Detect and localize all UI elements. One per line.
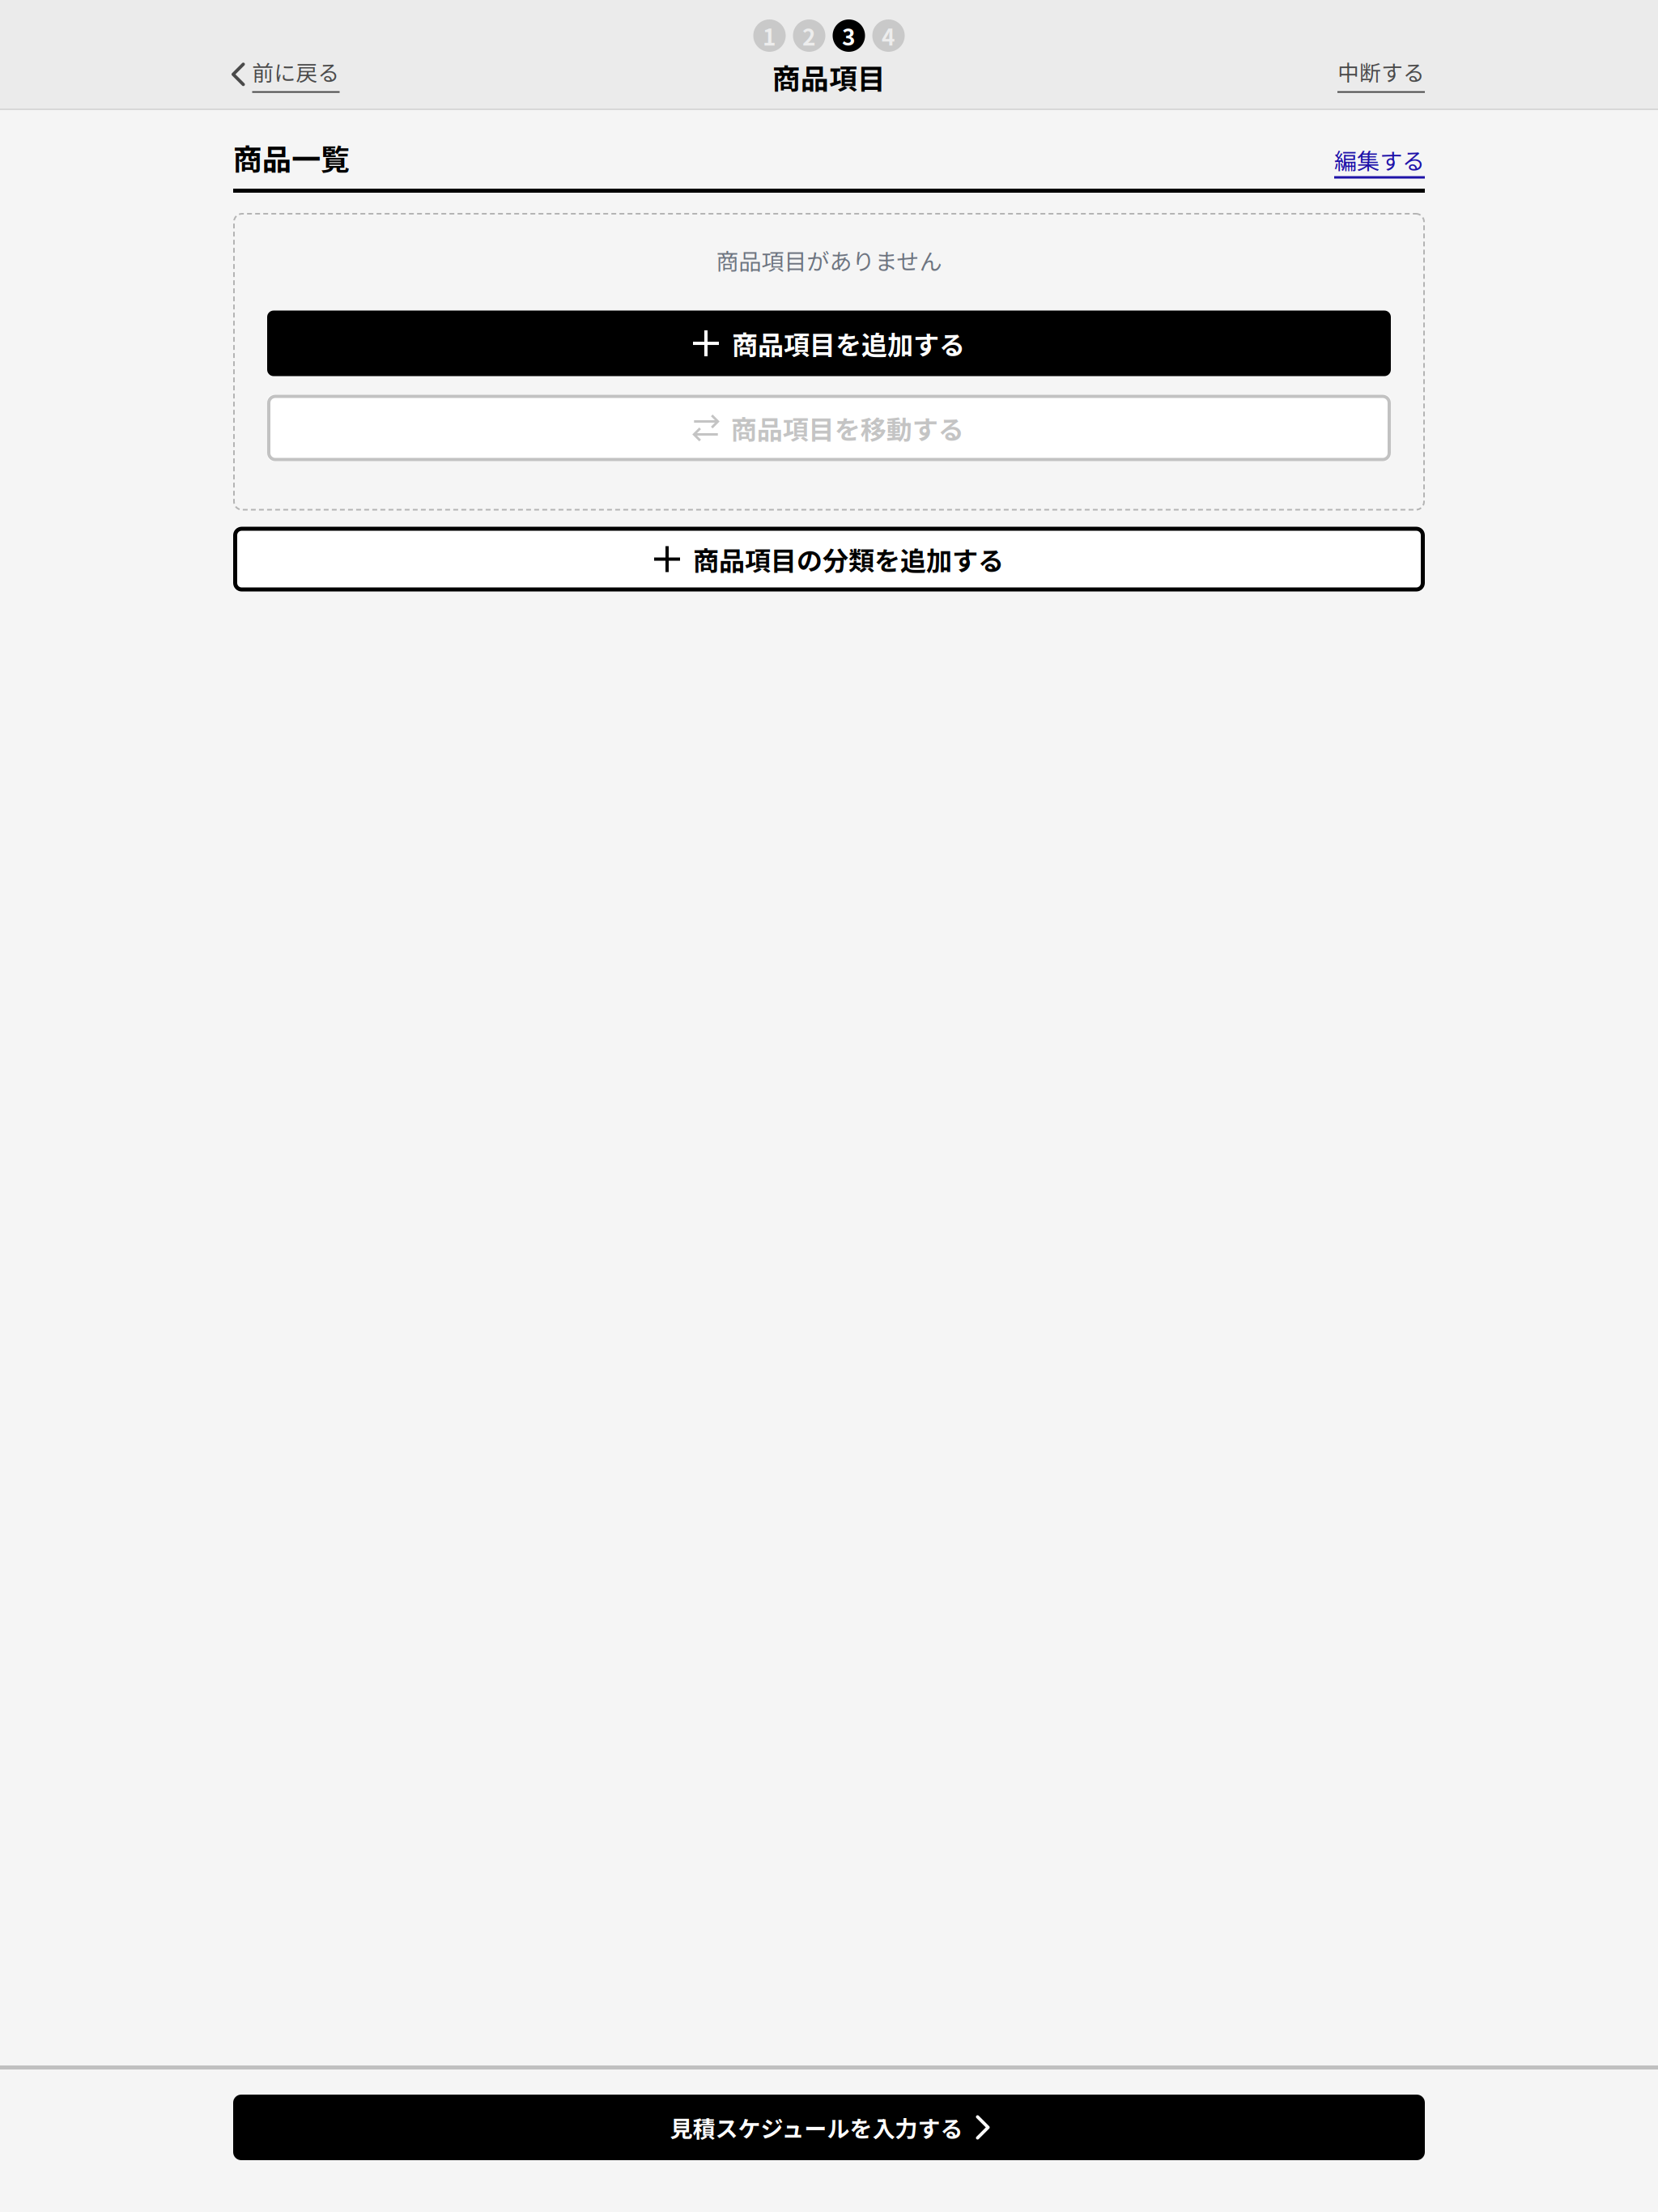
staticText: 商品項目を移動する (731, 409, 964, 447)
staticText: 4 (882, 19, 895, 52)
button[interactable]: 商品項目を追加する (267, 311, 1391, 376)
staticText: 商品一覧 (233, 136, 350, 179)
button[interactable]: 中断する (1333, 50, 1430, 98)
staticText: 見積スケジュールを入力する (670, 2111, 963, 2144)
button[interactable]: 編集する (1334, 136, 1425, 179)
staticText: 商品項目 (772, 57, 886, 97)
button[interactable]: 見積スケジュールを入力する (233, 2095, 1425, 2160)
staticText: 1 (763, 19, 776, 52)
staticText: 前に戻る (252, 56, 340, 87)
staticText: 編集する (1334, 143, 1425, 176)
button[interactable]: 前に戻る (228, 50, 344, 98)
staticText: 商品項目の分類を追加する (693, 540, 1004, 578)
staticText: 中断する (1337, 56, 1425, 87)
button[interactable]: 商品項目の分類を追加する (233, 527, 1425, 591)
staticText: 商品項目がありません (716, 244, 942, 276)
button[interactable]: 商品項目を移動する (267, 395, 1391, 461)
staticText: 商品項目を追加する (732, 325, 965, 362)
staticText: 2 (802, 19, 816, 52)
staticText: 3 (842, 19, 856, 52)
